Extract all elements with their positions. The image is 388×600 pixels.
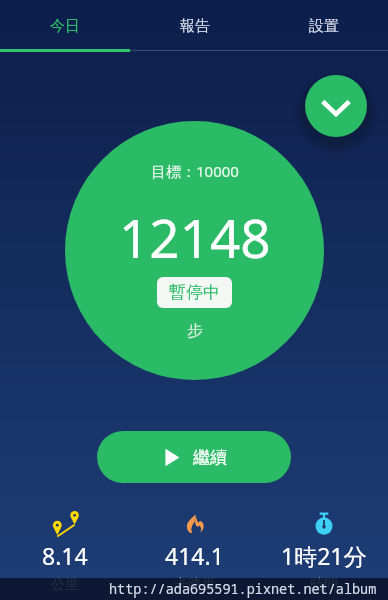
button[interactable]: 繼續 [97, 431, 291, 483]
button[interactable]: 8.14 [0, 506, 130, 594]
staticText: 暫停中 [169, 282, 220, 303]
button[interactable]: 1時21分 [259, 506, 388, 594]
staticText: 公里 [51, 576, 79, 594]
button[interactable]: 今日 [0, 0, 130, 52]
staticText: 卡路里 [174, 576, 216, 594]
button[interactable]: Collapse [305, 75, 367, 137]
button[interactable]: 暫停中 [157, 277, 232, 308]
staticText: 設置 [309, 17, 339, 36]
staticText: 步 [187, 321, 203, 341]
staticText: 今日 [50, 17, 80, 36]
button[interactable]: 414.1 [130, 506, 259, 594]
staticText: 時間 [310, 576, 338, 594]
staticText: http://ada695591.pixnet.net/album [109, 580, 377, 598]
staticText: 目標：10000 [151, 161, 239, 181]
staticText: 8.14 [42, 540, 88, 571]
staticText: 1時21分 [281, 540, 367, 571]
button[interactable]: 目標：10000 [65, 121, 324, 380]
staticText: 12148 [119, 201, 271, 273]
button[interactable]: 設置 [259, 0, 388, 52]
staticText: 繼續 [193, 447, 227, 468]
staticText: 報告 [180, 17, 210, 36]
staticText: 414.1 [165, 540, 224, 571]
button[interactable]: 報告 [130, 0, 259, 52]
